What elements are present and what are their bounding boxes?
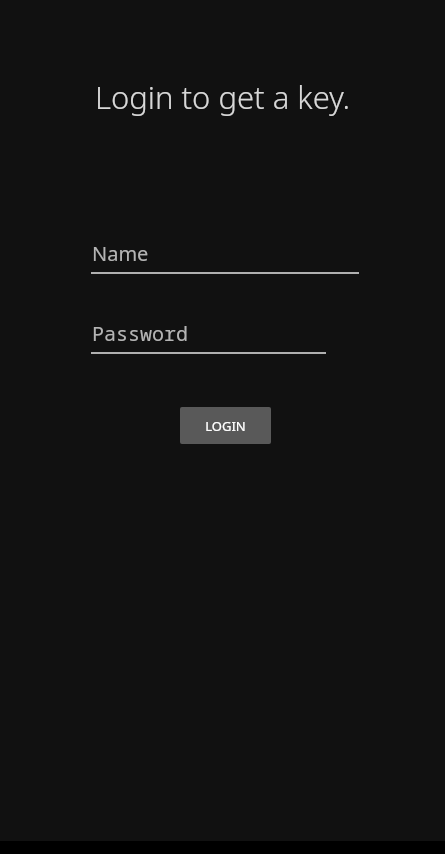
staticText: Login to get a key. [0, 76, 445, 118]
staticText: Name [92, 240, 149, 267]
staticText: LOGIN [205, 417, 246, 435]
staticText: Password [92, 320, 188, 347]
button[interactable]: Password [91, 320, 326, 354]
button[interactable]: LOGIN [180, 407, 271, 444]
button[interactable]: Name [91, 240, 359, 274]
